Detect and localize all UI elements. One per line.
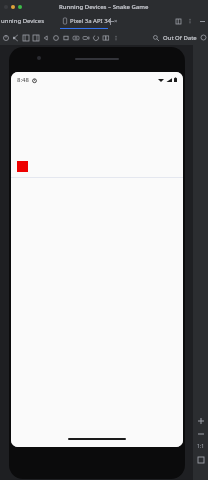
button[interactable]: More options: [186, 17, 194, 25]
button[interactable]: Overview: [61, 33, 70, 42]
button[interactable]: Power: [1, 33, 10, 42]
button[interactable]: ×: [114, 17, 118, 25]
button[interactable]: Minimize panel: [174, 17, 182, 25]
button[interactable]: Out Of Date: [163, 34, 197, 42]
button[interactable]: Rotate left: [21, 33, 30, 42]
button[interactable]: Screenshot: [71, 33, 80, 42]
button[interactable]: Home: [51, 33, 60, 42]
button[interactable]: Zoom to fit: [194, 453, 207, 466]
button[interactable]: Rotate right: [31, 33, 40, 42]
button[interactable]: Zoom out: [194, 427, 207, 440]
button[interactable]: Search: [151, 33, 160, 42]
button[interactable]: More actions: [111, 33, 120, 42]
button[interactable]: Zoom to actual size: [194, 440, 207, 453]
button[interactable]: Add device: [105, 16, 115, 26]
button[interactable]: Volume: [11, 33, 20, 42]
button[interactable]: Rotate: [91, 33, 100, 42]
button[interactable]: Back: [41, 33, 50, 42]
staticText: Running Devices – Snake Game: [59, 3, 149, 11]
button[interactable]: Update: [200, 34, 207, 41]
staticText: 1:1: [197, 443, 205, 450]
staticText: 8:48: [17, 76, 29, 84]
button[interactable]: Fold: [101, 33, 110, 42]
button[interactable]: Zoom in: [194, 414, 207, 427]
staticText: unning Devices: [1, 17, 45, 25]
button[interactable]: Pixel 3a API 34: [62, 17, 118, 25]
button[interactable]: Record screen: [81, 33, 90, 42]
staticText: Pixel 3a API 34: [70, 17, 112, 25]
button[interactable]: Hide: [198, 17, 206, 25]
